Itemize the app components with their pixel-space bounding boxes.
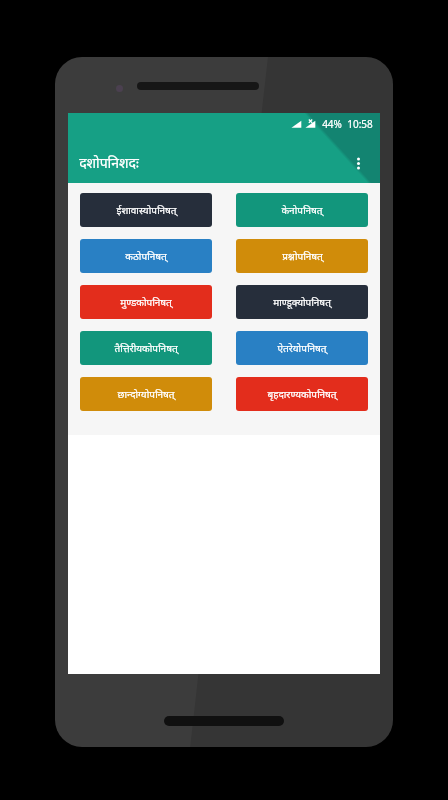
button[interactable]: ईशावास्योपनिषत् [80, 193, 212, 227]
staticText: बृहदारण्यकोपनिषत् [267, 387, 337, 401]
staticText: ऐतरेयोपनिषत् [277, 341, 327, 355]
staticText: कठोपनिषत् [125, 249, 167, 263]
staticText: केनोपनिषत् [281, 203, 323, 217]
staticText: मुण्डकोपनिषत् [120, 295, 172, 309]
button[interactable]: दशोपनिशदः [79, 153, 139, 172]
button[interactable]: मुण्डकोपनिषत् [80, 285, 212, 319]
button[interactable]: ऐतरेयोपनिषत् [236, 331, 368, 365]
staticText: प्रश्नोपनिषत् [282, 249, 323, 263]
button[interactable]: कठोपनिषत् [80, 239, 212, 273]
staticText: तैत्तिरीयकोपनिषत् [114, 341, 178, 355]
button[interactable]: केनोपनिषत् [236, 193, 368, 227]
staticText: माण्डूक्योपनिषत् [273, 295, 331, 309]
staticText: दशोपनिशदः [79, 153, 139, 172]
button[interactable]: माण्डूक्योपनिषत् [236, 285, 368, 319]
staticText: छान्दोग्योपनिषत् [117, 387, 175, 401]
button[interactable]: छान्दोग्योपनिषत् [80, 377, 212, 411]
staticText: 44% [322, 117, 342, 131]
button[interactable]: प्रश्नोपनिषत् [236, 239, 368, 273]
button[interactable]: More options [340, 145, 376, 181]
staticText: ईशावास्योपनिषत् [116, 203, 177, 217]
staticText: 10:58 [347, 117, 373, 131]
button[interactable]: बृहदारण्यकोपनिषत् [236, 377, 368, 411]
button[interactable]: तैत्तिरीयकोपनिषत् [80, 331, 212, 365]
